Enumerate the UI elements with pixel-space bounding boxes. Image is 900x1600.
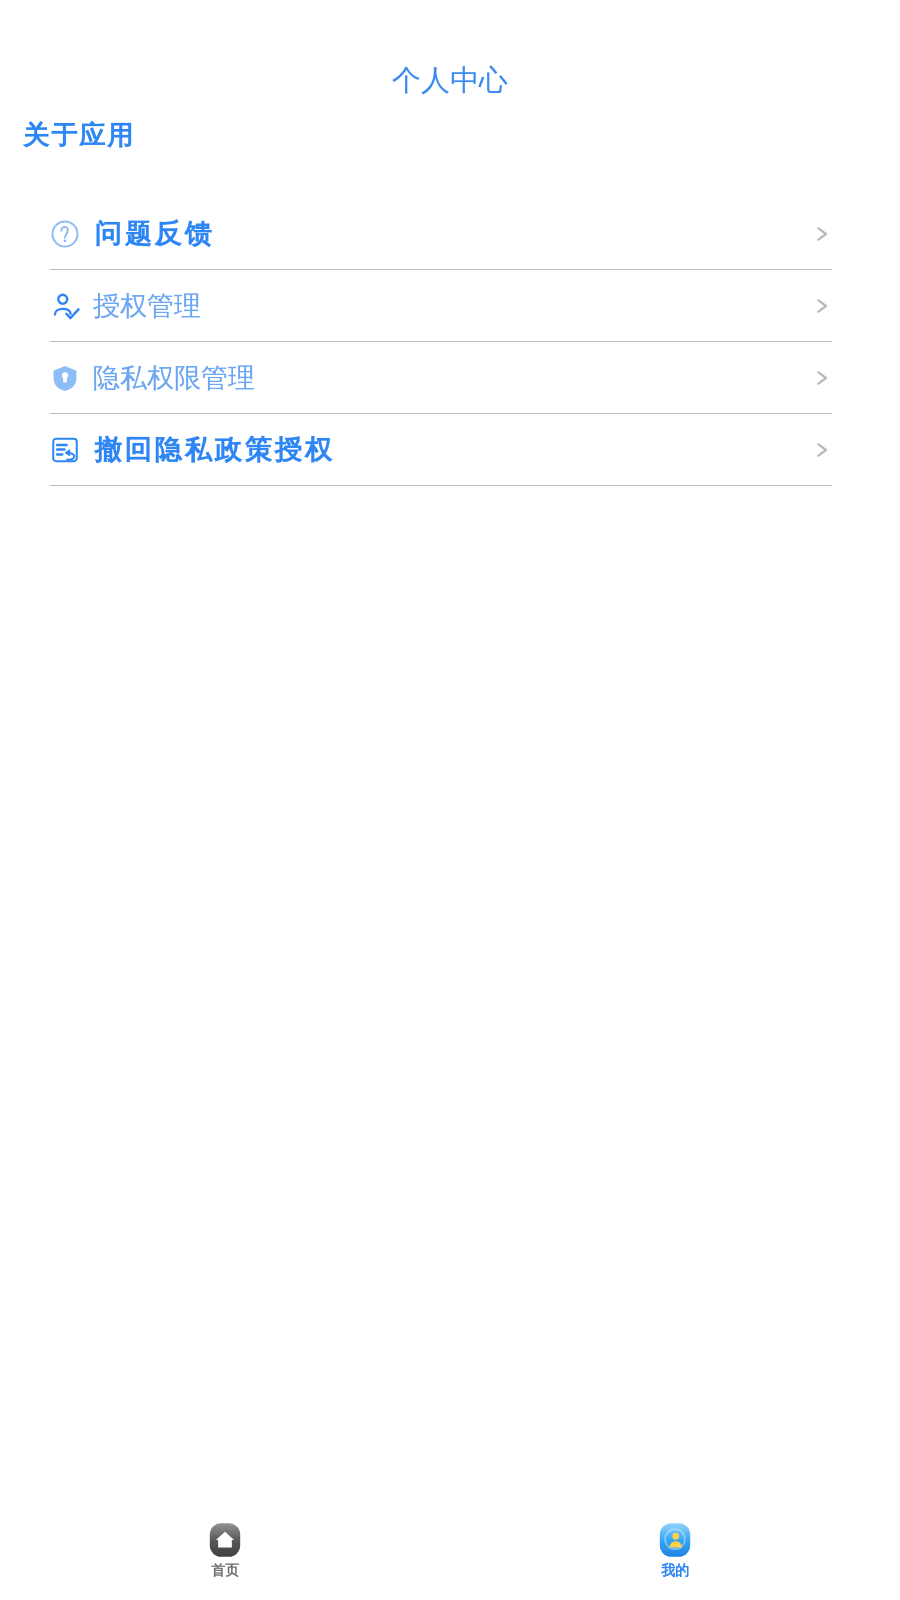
button[interactable]: 撤回隐私政策授权 bbox=[0, 414, 900, 485]
staticText: 授权管理 bbox=[93, 289, 201, 323]
staticText: 撤回隐私政策授权 bbox=[93, 433, 333, 467]
staticText: 我的 bbox=[661, 1562, 689, 1580]
staticText: 个人中心 bbox=[392, 62, 508, 99]
staticText: 隐私权限管理 bbox=[93, 361, 255, 395]
staticText: 关于应用 bbox=[22, 119, 134, 152]
staticText: 问题反馈 bbox=[93, 217, 213, 251]
button[interactable]: 问题反馈 bbox=[0, 198, 900, 269]
button[interactable]: 隐私权限管理 bbox=[0, 342, 900, 413]
button[interactable]: 授权管理 bbox=[0, 270, 900, 341]
button[interactable]: 我的 bbox=[450, 1517, 900, 1584]
button[interactable]: 首页 bbox=[0, 1517, 450, 1584]
staticText: 首页 bbox=[211, 1562, 239, 1580]
